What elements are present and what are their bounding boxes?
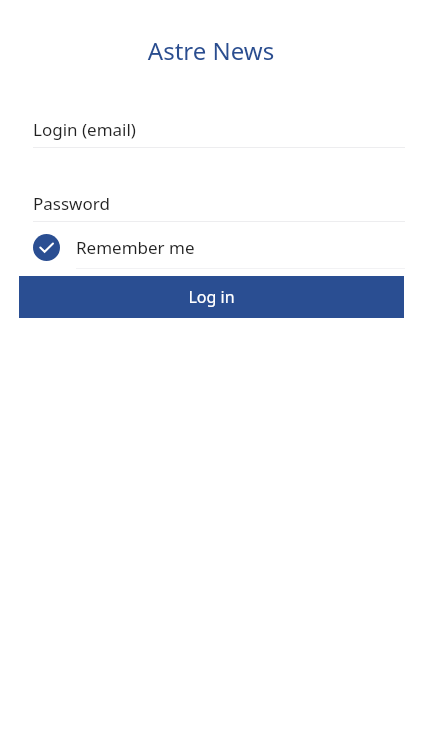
staticText: Password — [33, 192, 110, 215]
button[interactable]: Log in — [19, 276, 404, 318]
staticText: Login (email) — [33, 118, 136, 141]
button[interactable]: Password — [33, 186, 405, 221]
button[interactable]: Remember me — [33, 231, 405, 264]
staticText: Remember me — [76, 236, 195, 259]
staticText: Log in — [188, 286, 235, 308]
staticText: Astre News — [0, 34, 422, 67]
button[interactable]: Login (email) — [33, 110, 405, 148]
